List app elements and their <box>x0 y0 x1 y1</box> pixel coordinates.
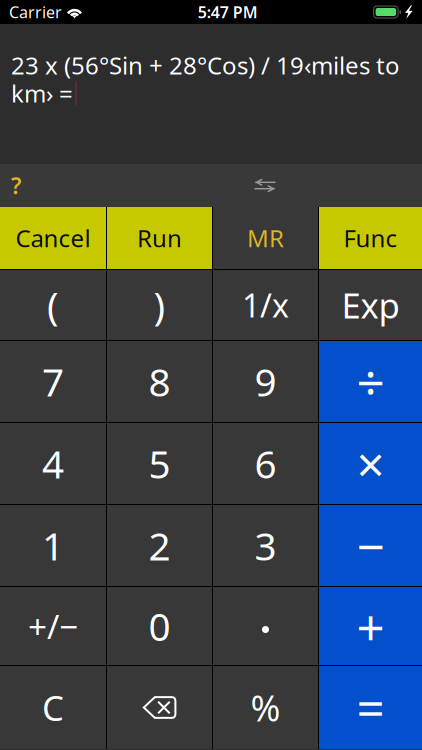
staticText: ) <box>153 279 165 331</box>
button[interactable]: 6 <box>213 423 318 504</box>
staticText: +/− <box>28 604 78 648</box>
staticText: MR <box>247 222 284 254</box>
button[interactable]: 2 <box>107 505 212 586</box>
staticText: 0 <box>148 600 170 652</box>
staticText: 9 <box>254 356 276 407</box>
staticText: ( <box>47 279 59 331</box>
staticText: 6 <box>254 438 276 489</box>
button[interactable]: + <box>319 587 422 665</box>
button[interactable]: +/− <box>0 587 106 665</box>
staticText: − <box>356 513 384 578</box>
button[interactable]: ( <box>0 270 106 340</box>
button[interactable] <box>107 666 212 749</box>
staticText: ? <box>11 170 21 200</box>
staticText: 8 <box>148 356 170 407</box>
staticText: Run <box>137 222 182 254</box>
staticText: Func <box>343 222 397 254</box>
staticText: km› = <box>11 77 73 109</box>
staticText: ÷ <box>356 349 384 414</box>
button[interactable]: 4 <box>0 423 106 504</box>
button[interactable]: Exp <box>319 270 422 340</box>
button[interactable]: Func <box>319 207 422 269</box>
button[interactable]: 8 <box>107 341 212 422</box>
button[interactable]: 0 <box>107 587 212 665</box>
button[interactable]: ) <box>107 270 212 340</box>
staticText: 23 x (56°Sin + 28°Cos) / 19‹miles to <box>11 49 400 81</box>
staticText: 7 <box>42 356 64 407</box>
button[interactable]: ÷ <box>319 341 422 422</box>
staticText: Exp <box>341 282 399 328</box>
staticText: = <box>356 675 384 740</box>
staticText: 1/x <box>242 284 289 326</box>
button[interactable]: − <box>319 505 422 586</box>
button[interactable]: 7 <box>0 341 106 422</box>
button[interactable] <box>213 587 318 665</box>
button[interactable]: Swap units <box>243 164 287 207</box>
button[interactable]: % <box>213 666 318 749</box>
button[interactable]: 3 <box>213 505 318 586</box>
button[interactable]: 9 <box>213 341 318 422</box>
button[interactable]: 1/x <box>213 270 318 340</box>
button[interactable]: Cancel <box>0 207 106 269</box>
button[interactable]: Run <box>107 207 212 269</box>
staticText: 4 <box>42 438 64 489</box>
staticText: × <box>356 431 384 496</box>
button[interactable]: = <box>319 666 422 749</box>
staticText: Cancel <box>15 222 90 254</box>
staticText: % <box>250 684 280 731</box>
staticText: 2 <box>148 520 170 571</box>
staticText: Carrier <box>9 1 62 23</box>
button[interactable]: 5 <box>107 423 212 504</box>
button[interactable]: Help <box>0 164 32 207</box>
staticText: 3 <box>254 520 276 571</box>
staticText: 5:47 PM <box>198 1 258 23</box>
button[interactable]: × <box>319 423 422 504</box>
button[interactable]: C <box>0 666 106 749</box>
staticText: + <box>356 593 384 659</box>
button[interactable]: 1 <box>0 505 106 586</box>
button[interactable]: MR <box>213 207 318 269</box>
staticText: C <box>42 684 64 730</box>
staticText: 5 <box>148 438 170 489</box>
staticText: 1 <box>42 520 64 571</box>
